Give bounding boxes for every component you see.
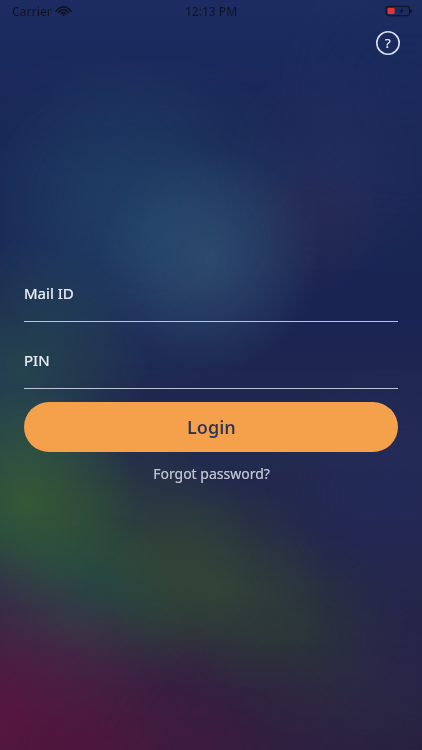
staticText: Mail ID xyxy=(24,283,74,303)
button[interactable]: Login xyxy=(24,402,398,452)
staticText: Login xyxy=(187,415,236,440)
staticText: Carrier xyxy=(12,3,52,19)
staticText: PIN xyxy=(24,350,50,370)
staticText: Forgot password? xyxy=(153,464,270,483)
staticText: ? xyxy=(385,34,391,52)
staticText: 12:13 PM xyxy=(185,3,238,19)
button[interactable]: Help xyxy=(370,25,406,61)
button[interactable]: Forgot password? xyxy=(145,460,278,487)
